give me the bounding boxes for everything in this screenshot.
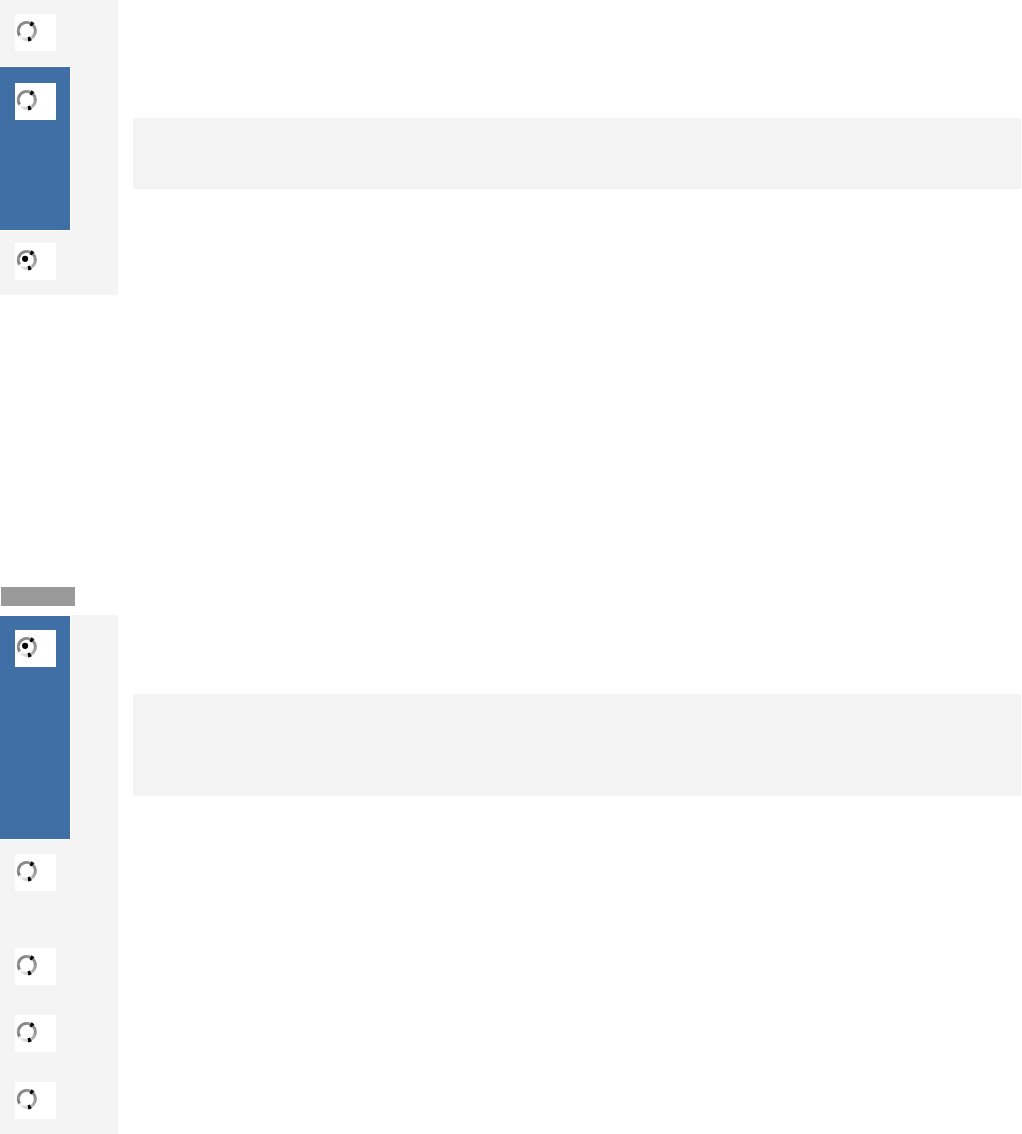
button[interactable]: Library, selected	[0, 615, 118, 840]
button[interactable]: Favourites	[0, 935, 118, 1002]
button[interactable]: Shared	[0, 840, 118, 935]
button[interactable]: Trash	[0, 1069, 118, 1134]
button[interactable]: Photos, selected	[0, 66, 118, 231]
button[interactable]: Archive	[0, 1002, 118, 1069]
button[interactable]: Albums	[0, 230, 118, 295]
button[interactable]: Gallery	[0, 0, 118, 66]
